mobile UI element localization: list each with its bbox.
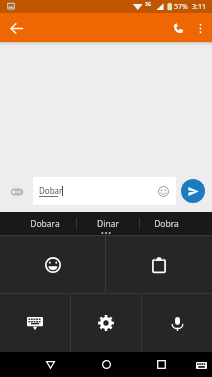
button[interactable]: Clipboard	[106, 236, 212, 293]
button[interactable]: Switch keyboard	[192, 356, 210, 374]
button[interactable]: Settings	[71, 294, 141, 352]
button[interactable]: Back	[37, 352, 63, 377]
button[interactable]: Back	[4, 16, 28, 40]
button[interactable]: Home	[93, 352, 119, 377]
button[interactable]: Hide keyboard	[0, 294, 70, 352]
button[interactable]: More options	[190, 18, 210, 38]
staticText: 57%	[174, 2, 188, 12]
staticText: Dinar	[97, 218, 119, 230]
button[interactable]: Call	[166, 16, 190, 40]
staticText: 3:11	[192, 2, 206, 12]
button[interactable]: Dobara	[0, 212, 76, 235]
button[interactable]: Attach	[5, 180, 29, 204]
staticText: Dobara	[30, 218, 60, 230]
button[interactable]: Dobar	[33, 177, 176, 205]
button[interactable]: Emoji	[155, 183, 171, 199]
button[interactable]: Voice input	[142, 294, 212, 352]
staticText: Dobar	[39, 185, 63, 196]
button[interactable]: Dobra	[140, 212, 212, 235]
staticText: Dobra	[154, 218, 179, 230]
button[interactable]: Recents	[148, 352, 174, 377]
button[interactable]: Emoji	[0, 236, 105, 293]
staticText: 3G	[145, 1, 152, 8]
button[interactable]: Send	[181, 179, 205, 203]
button[interactable]: Dinar	[77, 212, 139, 235]
